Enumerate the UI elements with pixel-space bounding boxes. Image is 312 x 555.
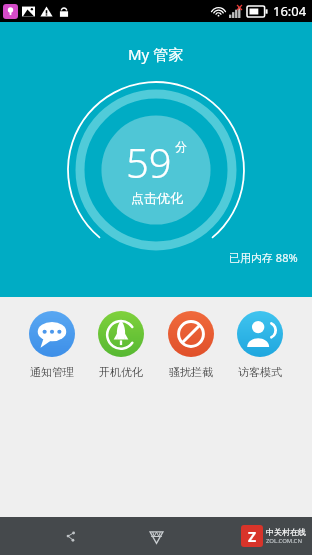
staticText: 通知管理	[30, 365, 74, 379]
button[interactable]: Optimize	[66, 80, 246, 260]
button[interactable]: Recent apps	[58, 524, 82, 548]
button[interactable]: 通知管理	[25, 311, 79, 379]
staticText: 访客模式	[238, 365, 282, 379]
staticText: 分	[175, 139, 187, 154]
staticText: 点击优化	[131, 190, 183, 206]
staticText: ZOL.COM.CN	[266, 537, 302, 545]
button[interactable]: 开机优化	[94, 311, 148, 379]
staticText: 已用内存 88%	[229, 250, 298, 265]
staticText: My 管家	[128, 44, 184, 64]
button[interactable]: 访客模式	[233, 311, 287, 379]
button[interactable]: Home	[141, 521, 171, 551]
staticText: 骚扰拦截	[169, 365, 213, 379]
staticText: 中关村在线	[266, 527, 306, 537]
staticText: Z	[248, 527, 257, 546]
staticText: 开机优化	[99, 365, 143, 379]
button[interactable]: 骚扰拦截	[164, 311, 218, 379]
staticText: 59	[126, 135, 172, 189]
staticText: 16:04	[273, 2, 307, 20]
